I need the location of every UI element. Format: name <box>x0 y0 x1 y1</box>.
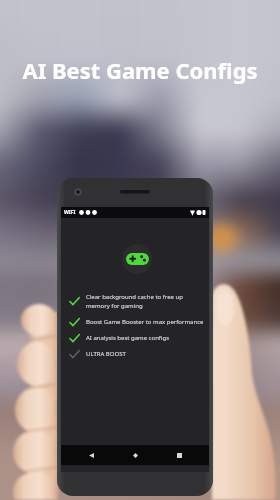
button[interactable]: Home <box>127 447 143 463</box>
button[interactable]: Recents <box>171 447 187 463</box>
button[interactable]: Game booster <box>122 244 152 274</box>
staticText: WIFI <box>64 209 76 216</box>
staticText: Boost Game Booster to max performance <box>86 318 204 326</box>
button[interactable]: Clear background cache to free up memory… <box>69 289 213 314</box>
button[interactable]: ULTRA BOOST <box>69 346 213 362</box>
button[interactable]: Boost Game Booster to max performance <box>69 314 213 330</box>
staticText: ULTRA BOOST <box>86 350 126 358</box>
staticText: Clear background cache to free up memory… <box>86 293 183 310</box>
staticText: AI Best Game Configs <box>0 55 280 85</box>
staticText: AI analysis best game configs <box>86 334 170 342</box>
button[interactable]: Back <box>83 447 99 463</box>
button[interactable]: AI analysis best game configs <box>69 330 213 346</box>
